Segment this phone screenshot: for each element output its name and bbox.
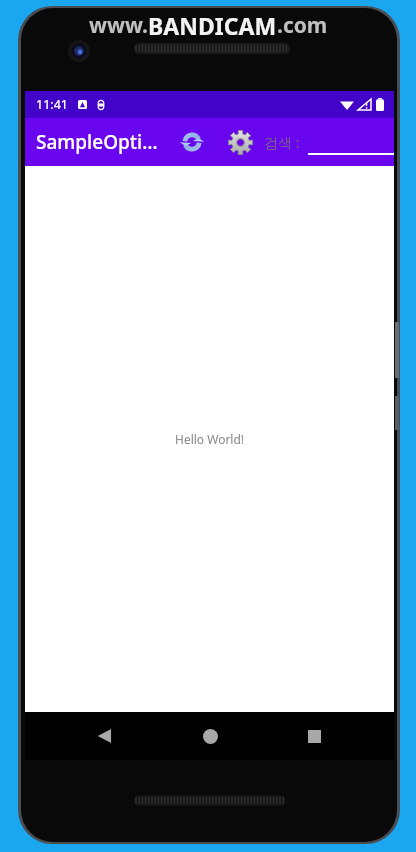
button[interactable]: Settings [222, 124, 258, 160]
staticText: .com [277, 11, 328, 40]
staticText: BANDICAM [148, 10, 277, 41]
button[interactable]: Refresh [174, 124, 210, 160]
staticText: www. [89, 11, 148, 40]
button[interactable]: Search field [308, 129, 394, 155]
button[interactable]: Back [81, 712, 129, 760]
staticText: Hello World! [175, 431, 245, 447]
staticText: 검색 : [264, 133, 300, 152]
staticText: SampleOpti… [36, 129, 158, 155]
button[interactable]: Home [186, 712, 234, 760]
button[interactable]: Recent apps [290, 712, 338, 760]
staticText: 11:41 [36, 96, 68, 113]
